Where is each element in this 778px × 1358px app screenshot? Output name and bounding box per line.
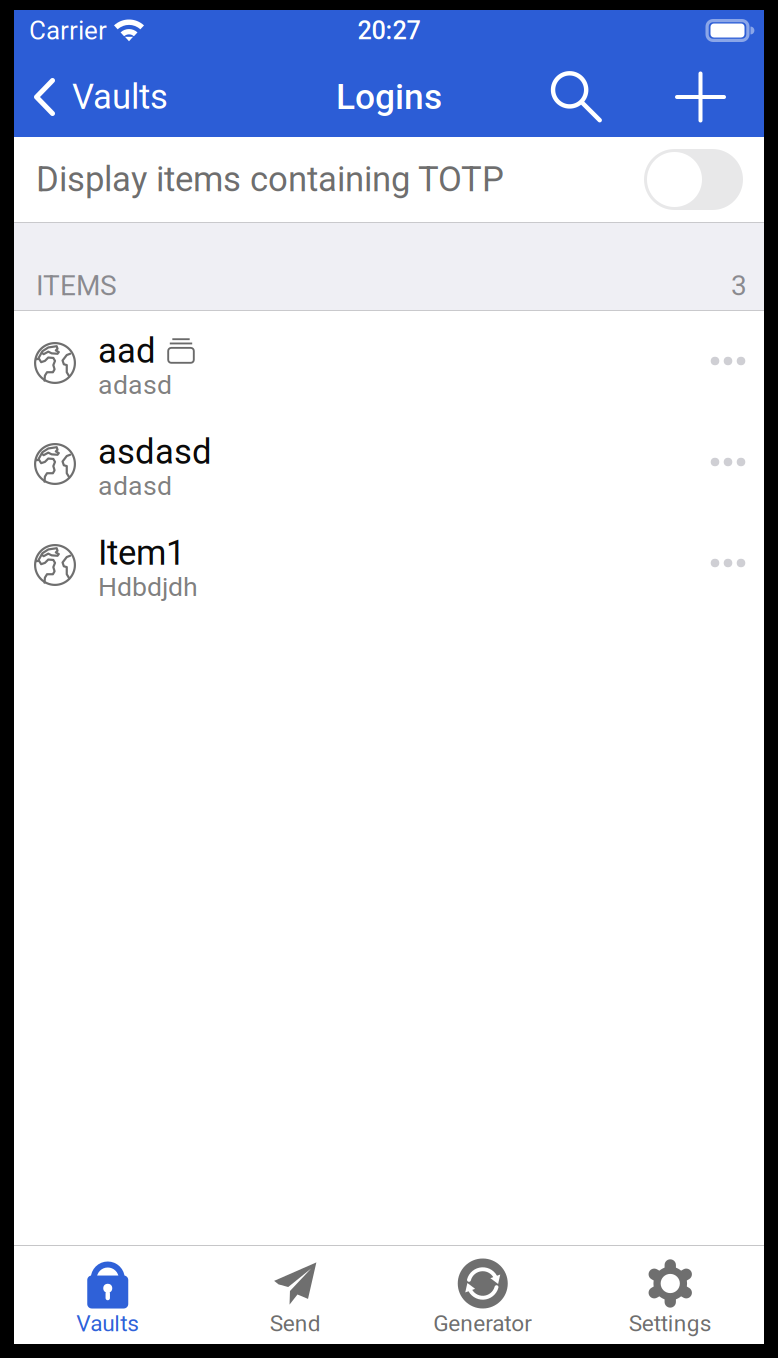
staticText: Hdbdjdh (98, 571, 198, 603)
button[interactable]: Generator (389, 1245, 576, 1344)
staticText: aad (98, 331, 156, 371)
button[interactable]: Search (551, 57, 602, 137)
button[interactable]: Vaults (14, 1245, 201, 1344)
button[interactable]: Display items containing TOTP (14, 137, 764, 222)
staticText: ITEMS (36, 269, 117, 302)
staticText: 20:27 (357, 16, 420, 45)
button[interactable]: Settings (576, 1245, 764, 1344)
button[interactable]: Add item (675, 57, 726, 137)
staticText: Settings (629, 1310, 712, 1337)
staticText: adasd (98, 369, 172, 401)
staticText: Vaults (72, 77, 168, 117)
button[interactable]: Send (201, 1245, 389, 1344)
button[interactable]: Vaults (14, 57, 176, 137)
staticText: Carrier (29, 15, 107, 46)
button[interactable]: aad (14, 311, 764, 412)
staticText: adasd (98, 470, 172, 502)
staticText: Logins (336, 76, 442, 118)
staticText: Display items containing TOTP (36, 159, 504, 200)
staticText: Send (270, 1310, 321, 1337)
button[interactable]: Item1 (14, 513, 764, 614)
staticText: 3 (731, 269, 747, 302)
staticText: Vaults (76, 1310, 139, 1337)
staticText: Item1 (98, 533, 185, 573)
button[interactable]: asdasd (14, 412, 764, 513)
staticText: asdasd (98, 432, 212, 472)
staticText: Generator (433, 1310, 532, 1337)
